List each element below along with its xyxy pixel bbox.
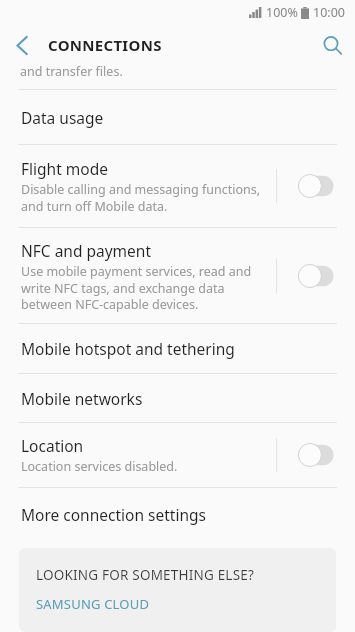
staticText: SAMSUNG CLOUD — [36, 595, 150, 612]
button[interactable]: NFC and payment toggle — [277, 228, 355, 323]
staticText: Flight mode — [21, 158, 108, 179]
staticText: NFC and payment — [21, 240, 152, 261]
button[interactable]: NFC and payment — [0, 228, 355, 323]
staticText: 100% — [266, 4, 298, 21]
staticText: CONNECTIONS — [48, 35, 162, 55]
button[interactable]: Flight mode — [0, 145, 355, 227]
staticText: Location — [21, 435, 84, 456]
staticText: LOOKING FOR SOMETHING ELSE? — [36, 566, 255, 584]
button[interactable]: LOOKING FOR SOMETHING ELSE? — [19, 548, 336, 632]
staticText: Mobile hotspot and tethering — [21, 338, 235, 359]
staticText: Disable calling and messaging functions,… — [21, 181, 261, 214]
button[interactable]: Mobile hotspot and tethering — [0, 324, 355, 373]
button[interactable]: Flight mode toggle — [277, 145, 355, 227]
button[interactable]: More connection settings — [0, 488, 355, 540]
staticText: and transfer files. — [20, 66, 123, 80]
button[interactable]: Location toggle — [277, 423, 355, 487]
button[interactable]: Search — [309, 24, 355, 66]
button[interactable]: Location — [0, 423, 355, 487]
button[interactable]: Back — [0, 24, 44, 66]
button[interactable]: Data usage — [0, 90, 355, 144]
staticText: Mobile networks — [21, 388, 143, 409]
staticText: 10:00 — [313, 4, 345, 21]
staticText: Location services disabled. — [21, 458, 178, 475]
staticText: Use mobile payment services, read and wr… — [21, 263, 252, 312]
button[interactable]: Mobile networks — [0, 374, 355, 422]
staticText: More connection settings — [21, 504, 206, 525]
button[interactable]: and transfer files. — [0, 66, 355, 89]
staticText: Data usage — [21, 107, 104, 128]
